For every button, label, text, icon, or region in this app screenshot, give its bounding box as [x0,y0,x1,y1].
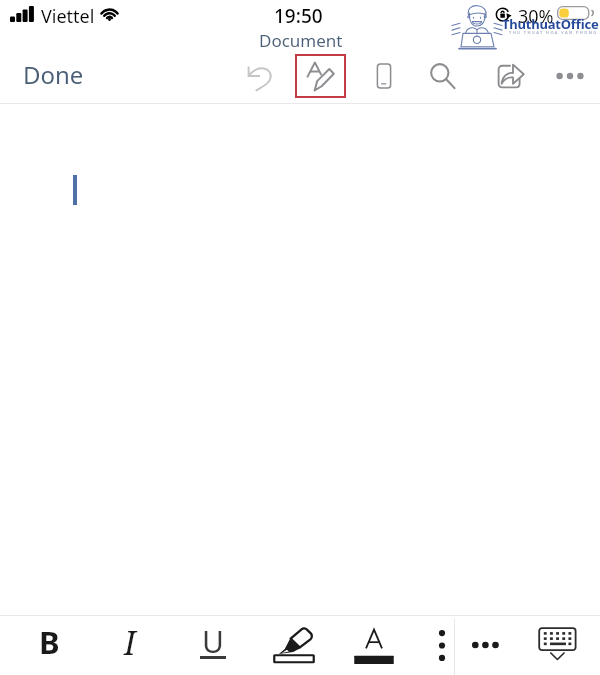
staticText: Done [23,58,84,91]
button[interactable]: Search [417,54,469,98]
button[interactable]: Undo [234,54,286,98]
button[interactable]: Bold [21,617,77,667]
button[interactable]: Italic [102,618,158,668]
staticText: Viettel [41,4,95,29]
button[interactable]: More [458,620,514,670]
button[interactable]: Font color [346,620,402,670]
button[interactable]: Phone layout [358,54,410,98]
button[interactable]: Done [11,52,96,97]
staticText: 30% [518,4,554,29]
button[interactable]: Draw [295,54,346,98]
staticText: U [202,621,224,655]
staticText: THU THUAT HOA VAN PHONG [509,30,598,35]
button[interactable]: Share [484,54,536,98]
staticText: Document [259,29,343,52]
staticText: B [39,621,60,663]
staticText: I [124,621,136,665]
staticText: 19:50 [274,3,323,29]
staticText: ThuthuatOffice [502,15,599,33]
button[interactable]: More options [544,54,596,98]
button[interactable]: Document editing area [0,104,600,615]
button[interactable]: Highlight [266,619,322,669]
button[interactable]: More formatting [414,620,470,670]
button[interactable]: Hide keyboard [530,619,586,669]
button[interactable]: Underline [185,618,241,668]
